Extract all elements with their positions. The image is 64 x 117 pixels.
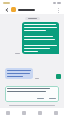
button[interactable]: Contact avatar bbox=[56, 74, 61, 79]
button[interactable]: Calls bbox=[32, 108, 48, 117]
button[interactable] bbox=[5, 68, 33, 79]
button[interactable]: App icon bbox=[11, 7, 16, 12]
button[interactable]: Profile bbox=[48, 108, 64, 117]
button[interactable] bbox=[5, 86, 59, 102]
button[interactable]: Home bbox=[0, 108, 16, 117]
button[interactable]: Chats bbox=[16, 108, 32, 117]
button[interactable] bbox=[48, 97, 57, 100]
button[interactable] bbox=[36, 97, 45, 100]
button[interactable]: More options bbox=[55, 7, 61, 13]
button[interactable] bbox=[22, 22, 59, 54]
button[interactable]: Back bbox=[3, 6, 10, 13]
